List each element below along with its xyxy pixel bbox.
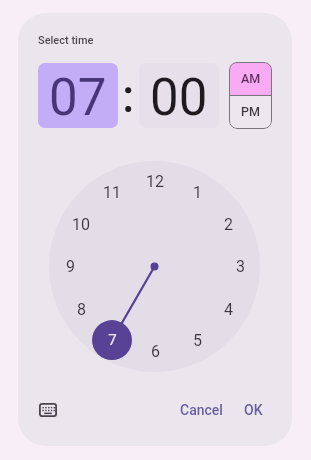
button[interactable]: 8	[67, 295, 95, 323]
staticText: 9	[66, 257, 75, 276]
button[interactable]: AM	[229, 62, 272, 95]
button[interactable]: 11	[98, 178, 126, 206]
staticText: Select time	[38, 34, 94, 47]
button[interactable]: 2	[214, 210, 242, 238]
button[interactable]: 5	[183, 326, 211, 354]
button[interactable]: 1	[183, 178, 211, 206]
staticText: 12	[146, 172, 164, 191]
button[interactable]: Cancel	[171, 396, 231, 424]
staticText: 3	[236, 257, 245, 276]
button[interactable]: 9	[56, 252, 84, 280]
button[interactable]: PM	[229, 95, 272, 128]
button[interactable]: 3	[226, 252, 254, 280]
button[interactable]: 07	[38, 63, 118, 128]
staticText: 2	[224, 215, 233, 234]
staticText: 7	[108, 331, 117, 349]
staticText: 8	[77, 300, 86, 319]
button[interactable]: 7	[98, 326, 126, 354]
button[interactable]: 12	[141, 167, 169, 195]
staticText: 1	[193, 183, 202, 202]
button[interactable]: 4	[214, 295, 242, 323]
staticText: 6	[151, 342, 160, 361]
staticText: 00	[150, 68, 208, 128]
staticText: AM	[241, 71, 261, 86]
button[interactable]: 10	[67, 210, 95, 238]
staticText: Cancel	[180, 402, 223, 418]
button[interactable]: 6	[141, 337, 169, 365]
staticText: 5	[193, 331, 202, 350]
staticText: 10	[72, 215, 90, 234]
button[interactable]	[28, 390, 68, 430]
staticText: PM	[241, 104, 260, 119]
button[interactable]: OK	[223, 396, 283, 424]
staticText: 11	[103, 183, 121, 202]
staticText: 07	[49, 68, 107, 128]
staticText: 4	[224, 300, 233, 319]
staticText: OK	[244, 402, 263, 418]
button[interactable]: 00	[139, 63, 219, 128]
